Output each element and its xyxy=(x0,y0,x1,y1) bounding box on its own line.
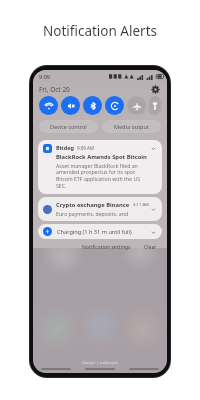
button[interactable]: Clear xyxy=(143,243,158,252)
button[interactable]: Expand xyxy=(149,205,157,213)
button[interactable]: Bluetooth xyxy=(83,96,102,115)
button[interactable]: Charging (1 h 31 m until full) xyxy=(38,224,162,239)
staticText: Clear xyxy=(144,244,157,251)
staticText: Fri, Oct 20 xyxy=(39,85,70,94)
staticText: 9:09 AM xyxy=(77,145,95,151)
button[interactable]: Auto rotate xyxy=(105,96,124,115)
button[interactable]: Mute xyxy=(61,96,80,115)
staticText: Bitdeg xyxy=(56,144,74,151)
button[interactable]: Bitdeg xyxy=(38,140,162,194)
button[interactable]: Notification settings xyxy=(81,243,132,252)
button[interactable]: Airplane mode xyxy=(127,96,146,115)
staticText: Euro payments, deposits, and withdrawals… xyxy=(56,210,149,217)
button[interactable]: Settings xyxy=(150,84,161,95)
button[interactable]: Crypto exchange Binance restore... xyxy=(38,197,162,221)
staticText: Device control xyxy=(50,123,87,130)
button[interactable]: Device control xyxy=(39,120,98,133)
staticText: 9:09 xyxy=(39,73,50,80)
button[interactable]: Media output xyxy=(102,120,161,133)
staticText: BlackRock Amends Spot Bitcoin ETF Filing xyxy=(56,153,149,161)
staticText: Asset manager BlackRock filed an amended… xyxy=(56,162,149,190)
staticText: Media output xyxy=(114,123,149,130)
button[interactable]: Wi-Fi xyxy=(39,96,58,115)
staticText: 4:11 AM xyxy=(133,202,149,208)
staticText: Google | wallpaper xyxy=(82,360,119,365)
staticText: Notification settings xyxy=(82,244,131,251)
button[interactable]: Expand xyxy=(149,144,157,152)
staticText: Charging (1 h 31 m until full) xyxy=(57,228,149,236)
button[interactable]: Flashlight xyxy=(149,96,161,115)
button[interactable]: Expand xyxy=(149,228,157,236)
staticText: Crypto exchange Binance restore... xyxy=(56,201,130,209)
staticText: Notification Alerts xyxy=(0,22,200,40)
